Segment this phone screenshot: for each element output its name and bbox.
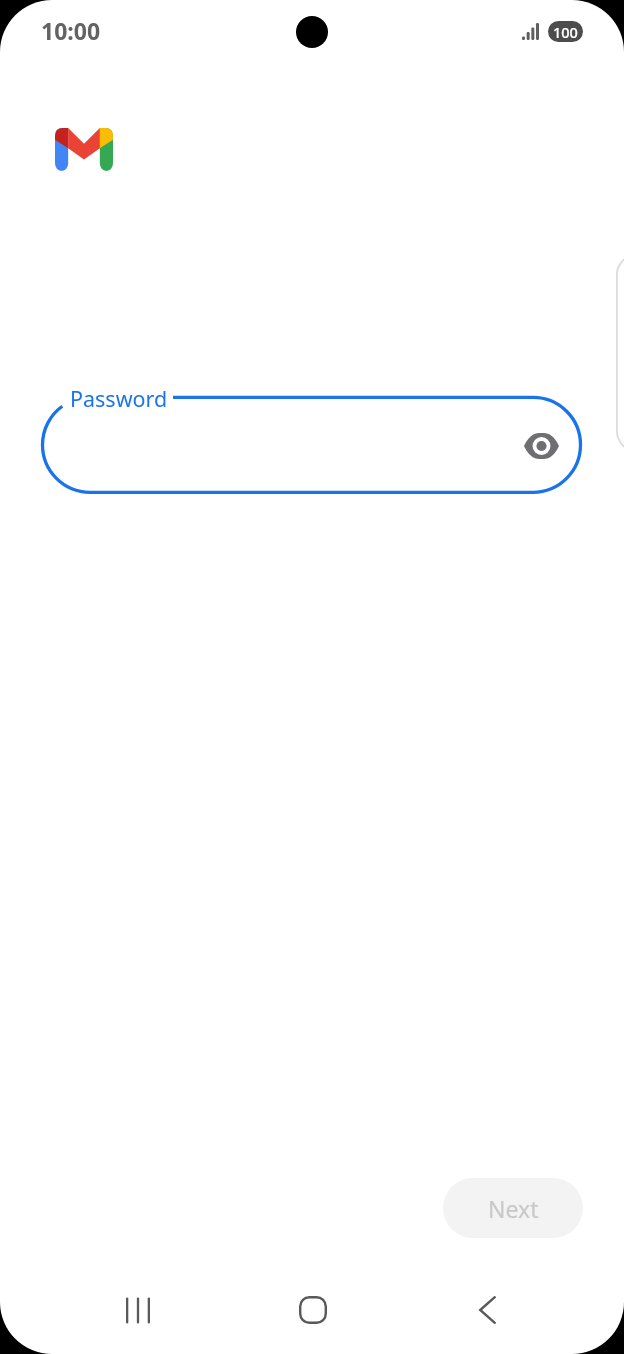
staticText: Password bbox=[70, 384, 168, 413]
button[interactable]: Password bbox=[36, 386, 588, 500]
button[interactable]: Show password bbox=[517, 422, 565, 470]
staticText: Next bbox=[488, 1193, 539, 1224]
staticText: 10:00 bbox=[41, 15, 101, 46]
button[interactable]: Back bbox=[445, 1274, 529, 1346]
staticText: 100 bbox=[553, 22, 578, 42]
button[interactable]: Home bbox=[270, 1274, 355, 1346]
button[interactable]: Next bbox=[443, 1178, 583, 1238]
button[interactable]: Recent apps bbox=[96, 1274, 180, 1346]
